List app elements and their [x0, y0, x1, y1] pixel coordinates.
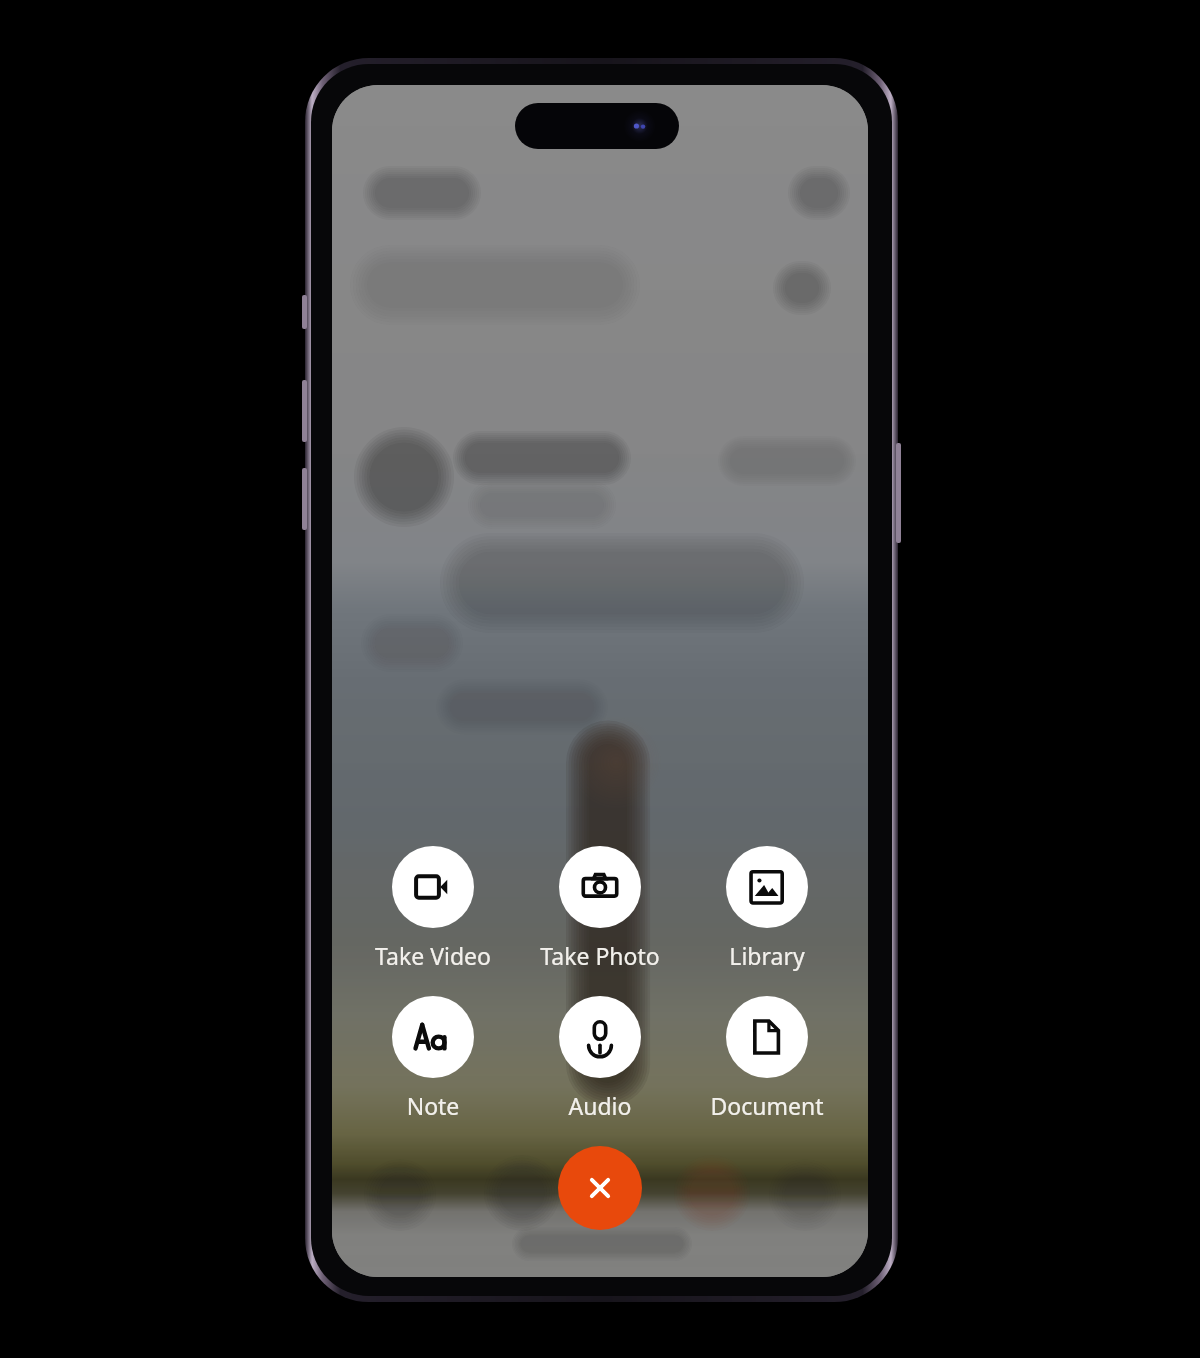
button[interactable]: Take Photo	[525, 846, 675, 971]
staticText: Document	[692, 1090, 842, 1121]
button[interactable]: Document	[692, 996, 842, 1121]
button[interactable]: Audio	[525, 996, 675, 1121]
button[interactable]: Note	[358, 996, 508, 1121]
button[interactable]: Close	[558, 1146, 642, 1230]
staticText: Take Photo	[525, 940, 675, 971]
button[interactable]: Take Video	[358, 846, 508, 971]
staticText: Take Video	[358, 940, 508, 971]
staticText: Note	[358, 1090, 508, 1121]
staticText: Audio	[525, 1090, 675, 1121]
button[interactable]: Library	[692, 846, 842, 971]
staticText: Library	[692, 940, 842, 971]
